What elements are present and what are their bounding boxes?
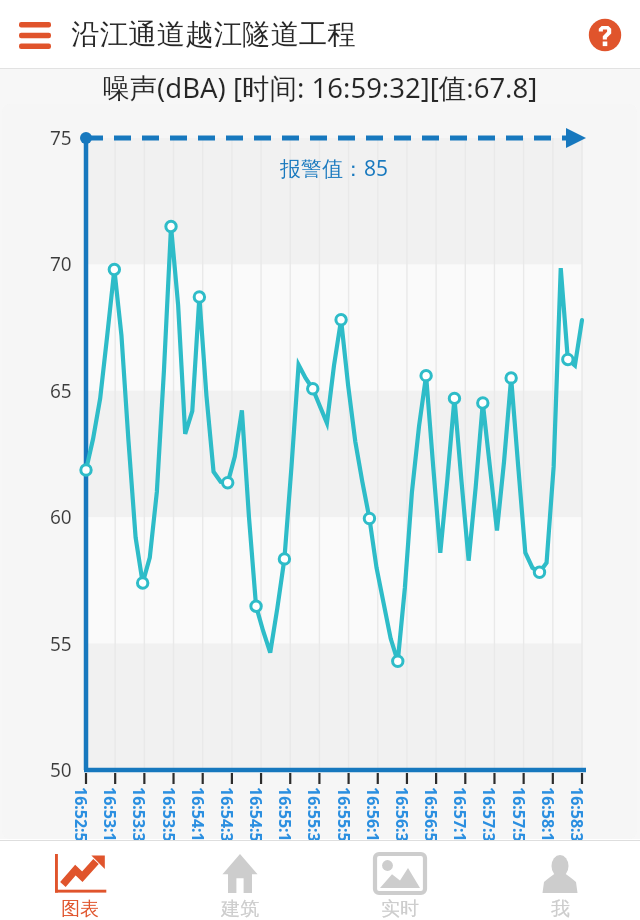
- staticText: 16:52:5: [70, 787, 92, 842]
- staticText: 图表: [61, 897, 99, 920]
- staticText: 16:53:5: [158, 787, 180, 842]
- staticText: 16:56:3: [391, 787, 413, 842]
- staticText: 报警值：85: [280, 154, 389, 183]
- button[interactable]: Menu: [10, 10, 60, 60]
- staticText: 16:57:3: [478, 787, 500, 842]
- staticText: 16:55:5: [333, 787, 355, 842]
- staticText: 65: [50, 378, 72, 404]
- staticText: 实时: [381, 897, 419, 920]
- staticText: 16:54:3: [216, 787, 238, 842]
- staticText: 我: [551, 897, 570, 920]
- staticText: 建筑: [221, 897, 259, 920]
- staticText: 16:55:1: [274, 787, 296, 842]
- staticText: 50: [50, 757, 72, 783]
- staticText: 16:57:1: [449, 787, 471, 842]
- button[interactable]: 我: [480, 841, 640, 920]
- staticText: 60: [50, 504, 72, 530]
- staticText: 70: [50, 251, 72, 277]
- staticText: 16:57:5: [508, 787, 530, 842]
- staticText: 16:53:1: [99, 787, 121, 842]
- staticText: 沿江通道越江隧道工程: [71, 17, 356, 53]
- staticText: 噪声(dBA) [时间: 16:59:32][值:67.8]: [102, 69, 538, 104]
- staticText: 16:58:3: [566, 787, 588, 842]
- staticText: 16:56:1: [362, 787, 384, 842]
- staticText: 16:54:5: [245, 787, 267, 842]
- staticText: 55: [50, 631, 72, 657]
- button[interactable]: 图表: [0, 841, 160, 920]
- button[interactable]: 实时: [320, 841, 480, 920]
- button[interactable]: 建筑: [160, 841, 320, 920]
- staticText: 16:55:3: [303, 787, 325, 842]
- staticText: 16:53:3: [128, 787, 150, 842]
- button[interactable]: Help: [579, 9, 631, 61]
- staticText: 16:56:5: [420, 787, 442, 842]
- staticText: 16:54:1: [187, 787, 209, 842]
- staticText: 16:58:1: [537, 787, 559, 842]
- staticText: 75: [50, 125, 72, 151]
